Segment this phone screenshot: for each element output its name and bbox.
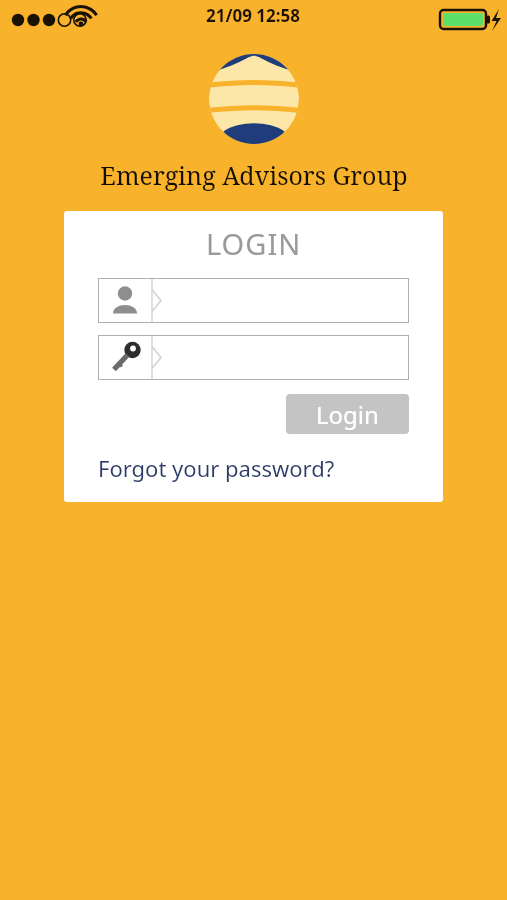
staticText: Login [316, 398, 379, 431]
staticText: Emerging Advisors Group [100, 158, 408, 192]
staticText: LOGIN [206, 224, 302, 263]
button[interactable]: Username [98, 278, 409, 323]
button[interactable]: Password [98, 335, 409, 380]
button[interactable]: Forgot your password? [98, 453, 335, 483]
button[interactable]: Login [286, 394, 409, 434]
staticText: Forgot your password? [98, 453, 335, 483]
staticText: 21/09 12:58 [206, 4, 301, 27]
